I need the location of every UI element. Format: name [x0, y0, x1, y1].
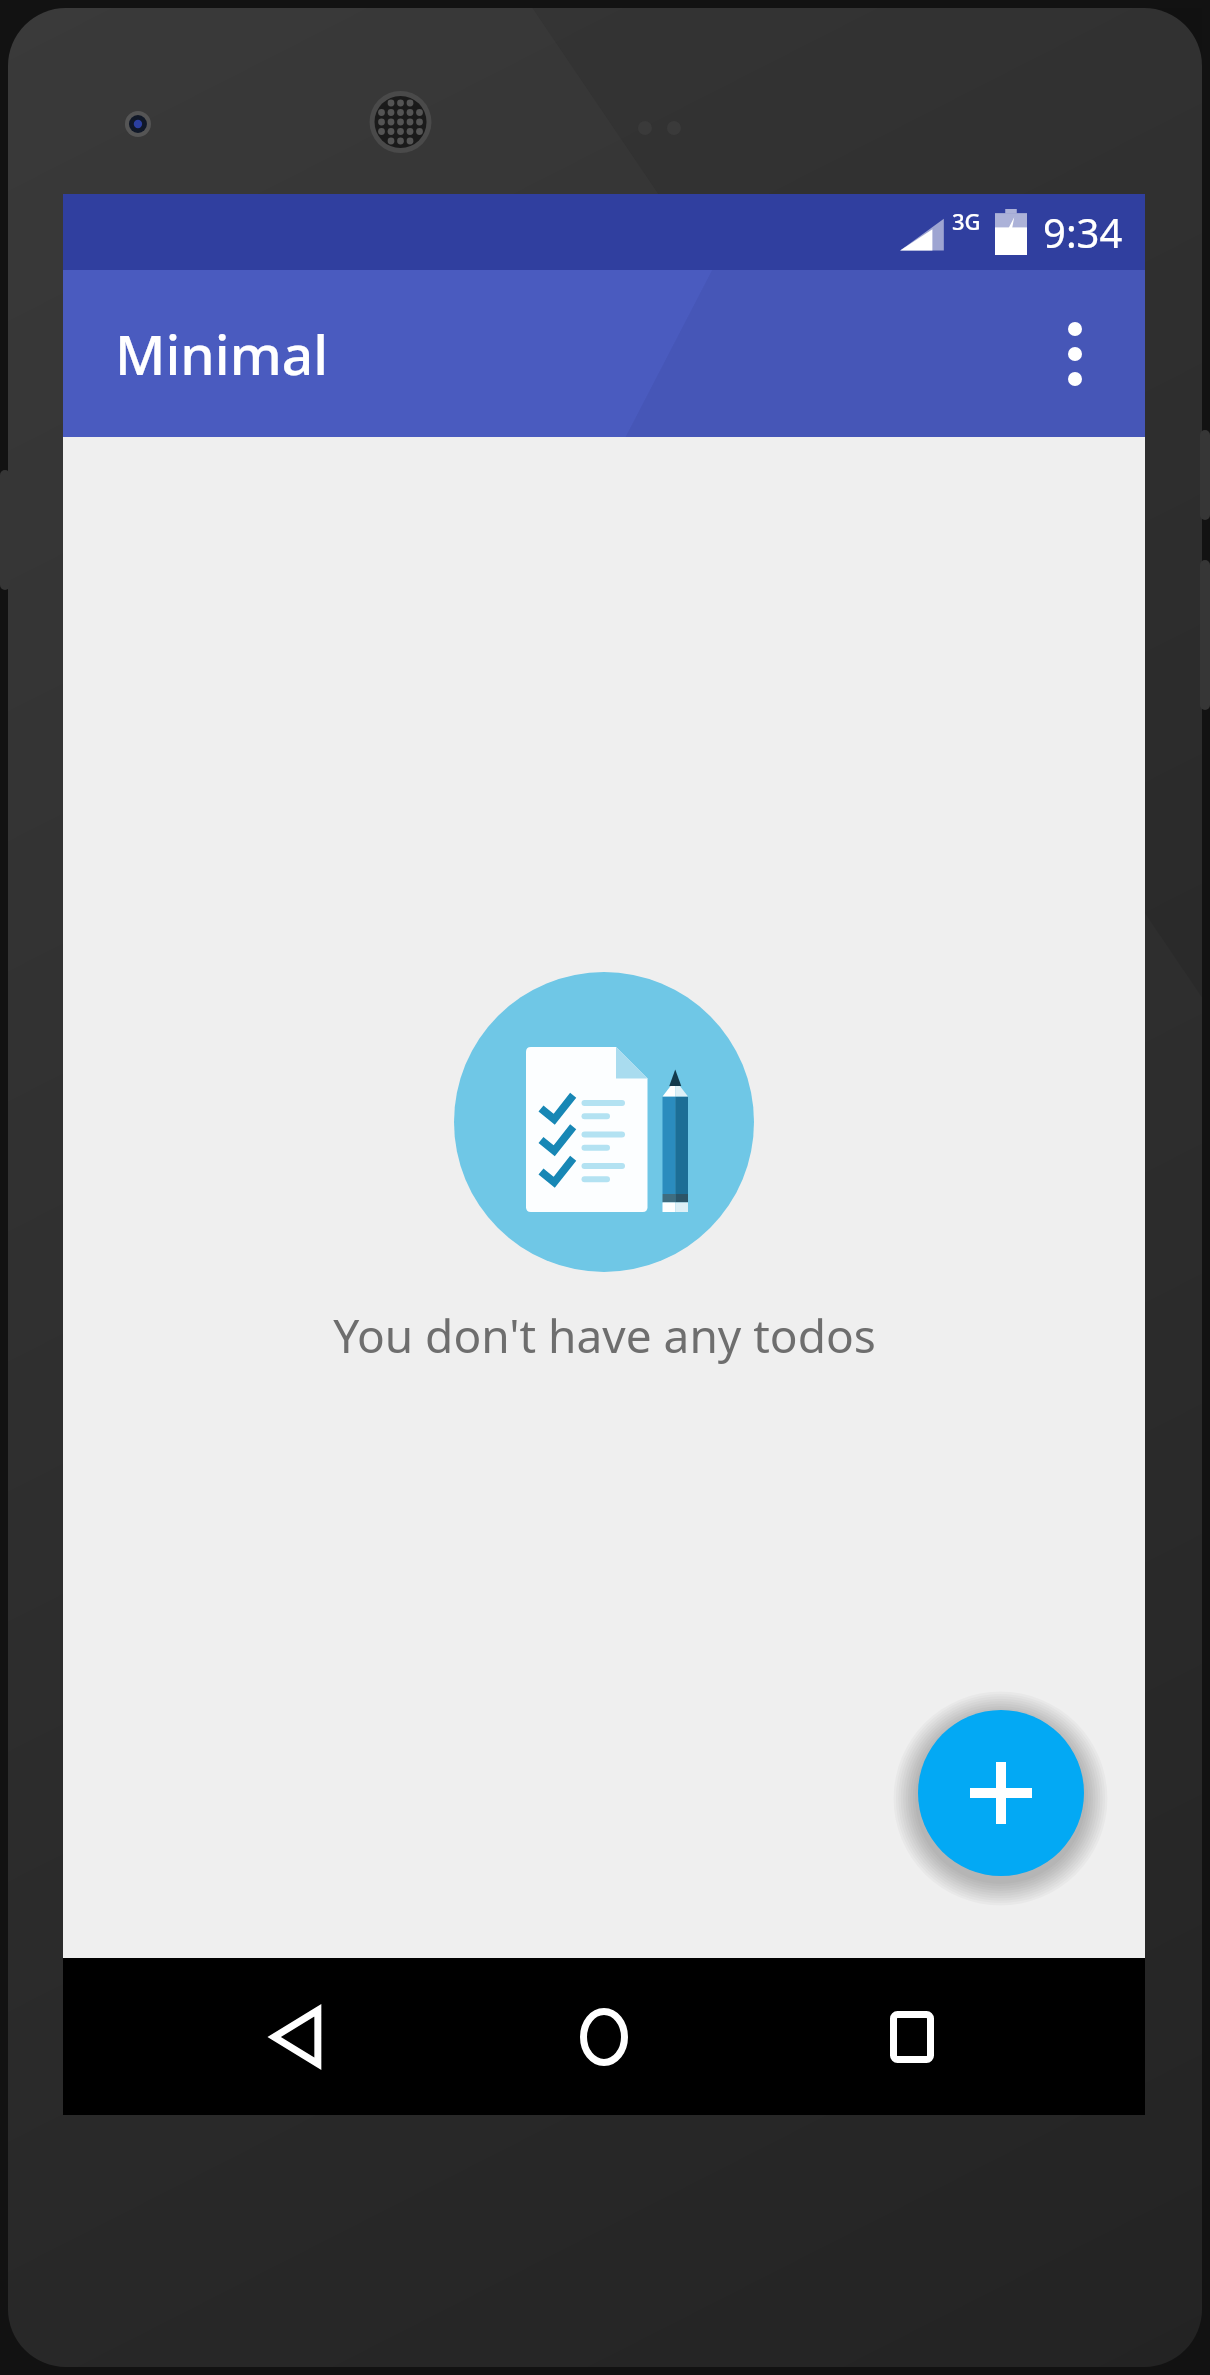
button[interactable]: Back	[221, 1958, 371, 2115]
button[interactable]: Add todo	[918, 1710, 1084, 1876]
staticText: 9:34	[1043, 205, 1123, 259]
button[interactable]: Recents	[837, 1958, 987, 2115]
button[interactable]: Home	[529, 1958, 679, 2115]
button[interactable]: More options	[1027, 306, 1123, 402]
staticText: Minimal	[115, 316, 329, 391]
staticText: You don't have any todos	[333, 1304, 876, 1367]
staticText: 3G	[952, 206, 981, 236]
